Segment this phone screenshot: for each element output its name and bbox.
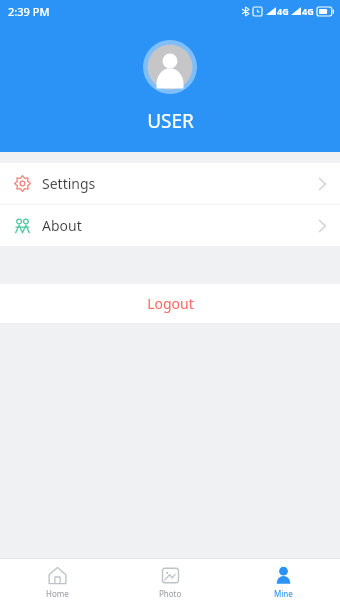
staticText: Settings [42, 174, 96, 193]
staticText: Logout [147, 294, 194, 313]
button[interactable]: Settings [0, 163, 340, 204]
staticText: USER [147, 108, 194, 134]
staticText: Home [46, 588, 69, 599]
button[interactable]: Photo [114, 558, 227, 606]
staticText: Mine [274, 588, 293, 599]
staticText: 4G [277, 5, 289, 17]
button[interactable]: Logout [0, 284, 340, 323]
button[interactable]: Mine [227, 558, 340, 606]
staticText: 4G [302, 5, 314, 17]
staticText: 2:39 PM [8, 4, 50, 19]
button[interactable]: About [0, 205, 340, 246]
staticText: About [42, 216, 82, 235]
staticText: Photo [159, 588, 182, 599]
button[interactable]: Home [0, 558, 114, 606]
